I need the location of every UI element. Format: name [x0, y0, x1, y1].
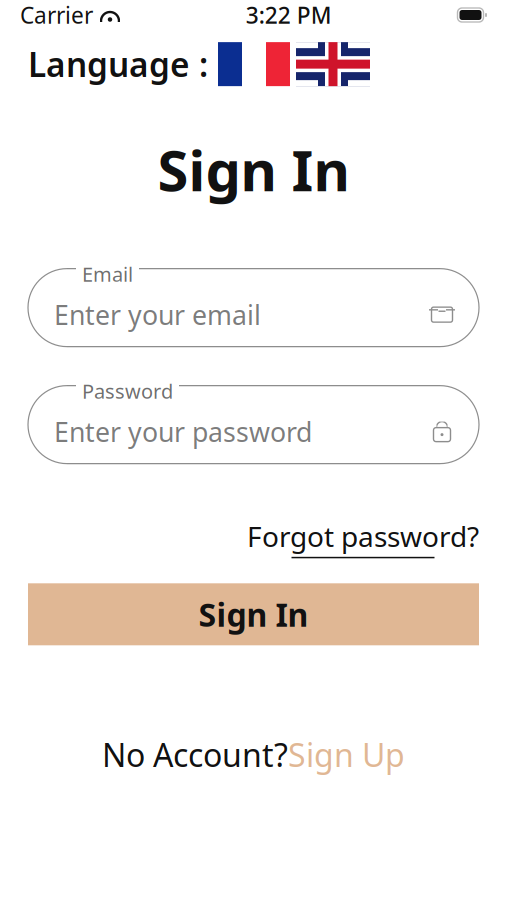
staticText: Forgot password? — [247, 518, 479, 555]
staticText: Enter your email — [54, 297, 261, 332]
button[interactable]: Forgot password? — [247, 518, 479, 558]
button[interactable]: Sign In — [28, 583, 479, 645]
staticText: Sign Up — [288, 733, 405, 776]
staticText: Carrier — [20, 0, 93, 30]
staticText: Password — [82, 378, 173, 404]
button[interactable]: French — [208, 42, 290, 86]
staticText: No Account? — [102, 733, 288, 776]
staticText: Sign In — [157, 132, 349, 207]
button[interactable]: No Account? — [102, 733, 405, 776]
staticText: 3:22 PM — [246, 0, 332, 30]
staticText: Email — [82, 261, 133, 287]
staticText: Sign In — [198, 593, 308, 636]
button[interactable]: English — [290, 42, 370, 86]
staticText: Enter your password — [54, 414, 312, 449]
staticText: Language : — [28, 42, 208, 86]
